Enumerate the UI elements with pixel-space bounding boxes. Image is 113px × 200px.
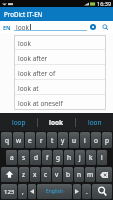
button[interactable]: l — [97, 150, 107, 165]
staticText: loon — [88, 118, 102, 127]
button[interactable]: English — [37, 184, 72, 199]
button[interactable]: EN — [0, 21, 14, 33]
staticText: n — [77, 170, 82, 179]
staticText: q — [5, 136, 9, 145]
staticText: s — [22, 153, 26, 162]
button[interactable]: Search — [92, 184, 112, 199]
staticText: t — [51, 136, 54, 145]
button[interactable]: g — [53, 150, 63, 165]
button[interactable]: r — [36, 132, 46, 148]
staticText: c — [44, 170, 48, 179]
staticText: l — [101, 153, 103, 162]
button[interactable]: Previous — [28, 184, 36, 199]
staticText: m — [87, 170, 94, 179]
button[interactable]: , — [18, 184, 27, 199]
staticText: look — [18, 39, 32, 48]
button[interactable]: f — [42, 150, 52, 165]
staticText: k — [89, 153, 93, 162]
button[interactable]: b — [63, 167, 73, 182]
staticText: w — [16, 136, 22, 145]
staticText: look after of — [18, 69, 56, 78]
button[interactable]: Next — [73, 184, 81, 199]
staticText: d — [34, 153, 38, 162]
button[interactable]: h — [64, 150, 74, 165]
staticText: , — [22, 187, 24, 196]
button[interactable]: loop — [0, 113, 37, 131]
staticText: look — [16, 23, 30, 32]
staticText: b — [66, 170, 70, 179]
button[interactable]: Shift — [1, 167, 18, 182]
staticText: . — [86, 187, 88, 196]
button[interactable]: look — [14, 35, 106, 50]
staticText: y — [61, 136, 65, 145]
staticText: g — [56, 153, 60, 162]
staticText: h — [67, 153, 72, 162]
staticText: a — [10, 153, 14, 162]
button[interactable]: d — [30, 150, 41, 165]
button[interactable]: look after — [14, 50, 106, 65]
button[interactable]: m — [85, 167, 95, 182]
button[interactable]: Search — [99, 21, 112, 33]
button[interactable]: e — [25, 132, 35, 148]
staticText: 16:39 — [97, 0, 112, 7]
button[interactable]: look at — [14, 80, 106, 95]
staticText: e — [28, 136, 32, 145]
staticText: look at oneself — [18, 99, 63, 108]
staticText: f — [46, 153, 49, 162]
button[interactable]: x — [30, 167, 40, 182]
staticText: i — [84, 136, 86, 145]
button[interactable]: a — [6, 150, 17, 165]
button[interactable]: look at oneself — [14, 95, 106, 110]
button[interactable]: 123 — [1, 184, 17, 199]
button[interactable]: v — [52, 167, 62, 182]
button[interactable]: loon — [76, 113, 113, 131]
button[interactable]: w — [13, 132, 24, 148]
staticText: p — [105, 136, 109, 145]
staticText: look at — [18, 84, 39, 93]
button[interactable]: o — [91, 132, 101, 148]
staticText: look after — [18, 54, 48, 63]
button[interactable]: n — [74, 167, 84, 182]
button[interactable]: Clear — [87, 21, 99, 33]
button[interactable]: q — [1, 132, 12, 148]
button[interactable]: p — [102, 132, 112, 148]
button[interactable]: t — [47, 132, 57, 148]
button[interactable]: s — [18, 150, 29, 165]
button[interactable]: c — [41, 167, 51, 182]
button[interactable]: look after of — [14, 65, 106, 80]
staticText: r — [40, 136, 43, 145]
staticText: j — [79, 153, 81, 162]
staticText: loop — [12, 118, 26, 127]
button[interactable]: y — [58, 132, 68, 148]
staticText: u — [72, 136, 77, 145]
button[interactable]: look — [38, 113, 75, 131]
staticText: English — [46, 188, 64, 195]
staticText: EN — [3, 24, 11, 31]
staticText: ProDict IT-EN — [4, 10, 43, 18]
staticText: o — [94, 136, 98, 145]
button[interactable]: z — [19, 167, 29, 182]
button[interactable]: u — [69, 132, 79, 148]
button[interactable]: Backspace — [96, 167, 112, 182]
button[interactable]: i — [80, 132, 90, 148]
staticText: z — [22, 170, 26, 179]
button[interactable]: k — [86, 150, 96, 165]
button[interactable]: j — [75, 150, 85, 165]
staticText: look — [49, 118, 64, 127]
staticText: 123 — [4, 188, 15, 196]
staticText: v — [55, 170, 59, 179]
staticText: x — [33, 170, 37, 179]
button[interactable]: . — [82, 184, 91, 199]
